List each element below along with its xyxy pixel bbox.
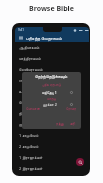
button[interactable]: யோசுவா [15, 97, 89, 108]
staticText: உபாகமம் [19, 90, 35, 94]
button[interactable]: ரூத் [15, 119, 89, 130]
button[interactable]: Search [76, 158, 84, 166]
button[interactable]: நியாயாதிபதிகள் [15, 108, 89, 119]
button[interactable]: புதிய ஏற்பாடு [22, 81, 81, 87]
staticText: ரூத் [19, 123, 25, 127]
staticText: ரோமர் [66, 107, 77, 110]
staticText: பரிசுத்த வேதாகமம் [26, 35, 62, 41]
staticText: நியாயாதிபதிகள் [19, 112, 45, 116]
staticText: யாத்திராகமம் [19, 57, 41, 61]
staticText: மாற்கு [47, 97, 56, 100]
staticText: தேர்ந்தெடுக்கவும் [35, 74, 68, 78]
button[interactable]: மாற்கு [22, 95, 81, 101]
staticText: சரி [70, 122, 76, 126]
staticText: யோசுவா [19, 101, 34, 105]
staticText: மத்தேயு 1 [42, 90, 57, 95]
staticText: 1 சாமுவேல் [19, 133, 39, 138]
button[interactable]: 2 இராஜாக்கள் [15, 163, 89, 173]
button[interactable]: 1 சாமுவேல் [15, 130, 89, 141]
button[interactable]: 1 இராஜாக்கள் [15, 152, 89, 163]
staticText: லேவியராகமம் [19, 68, 43, 72]
staticText: ரத்து [56, 122, 64, 126]
button[interactable]: 2 சாமுவேல் [15, 141, 89, 152]
staticText: 1 இராஜாக்கள் [19, 155, 43, 160]
staticText: புதிய ஏற்பாடு [42, 82, 61, 87]
button[interactable]: எண்ணாகமம் [15, 75, 89, 86]
button[interactable]: சரி [68, 122, 78, 126]
button[interactable]: ஆதியாகமம் [15, 42, 89, 53]
button[interactable]: லூக்கா 2 [22, 101, 81, 107]
staticText: 9:41 [18, 28, 24, 32]
button[interactable]: உபாகமம் [15, 86, 89, 97]
staticText: யோவான் [26, 107, 40, 110]
button[interactable]: யாத்திராகமம் [15, 53, 89, 64]
button[interactable]: மத்தேயு 1 [22, 89, 81, 95]
staticText: லூக்கா 2 [43, 102, 57, 107]
staticText: Browse Bible [29, 4, 74, 14]
button[interactable]: ரத்து [54, 122, 66, 126]
button[interactable]: Menu [17, 34, 24, 41]
staticText: ஆதியாகமம் [19, 46, 40, 50]
staticText: எண்ணாகமம் [19, 79, 40, 83]
button[interactable]: லேவியராகமம் [15, 64, 89, 75]
staticText: 2 இராஜாக்கள் [19, 166, 43, 171]
staticText: 2 சாமுவேல் [19, 144, 39, 149]
